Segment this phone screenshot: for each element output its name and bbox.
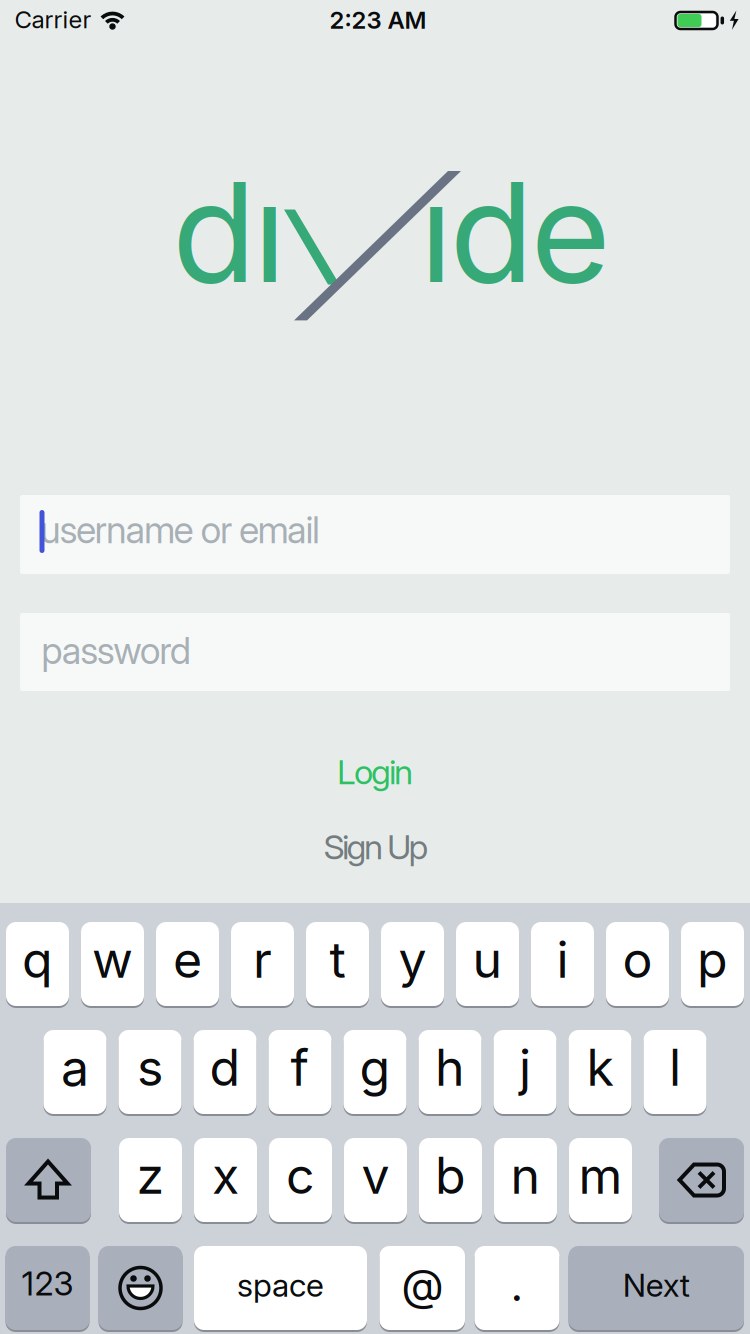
button[interactable]: p (681, 922, 744, 1006)
staticText: username or email (40, 507, 320, 552)
staticText: l (669, 1037, 681, 1098)
button[interactable]: j (493, 1030, 556, 1114)
staticText: z (136, 1145, 164, 1206)
staticText: c (286, 1145, 315, 1206)
staticText: ıde (419, 149, 610, 315)
button[interactable]: c (269, 1138, 332, 1222)
button[interactable]: @ (379, 1246, 465, 1330)
staticText: g (359, 1037, 390, 1098)
button[interactable]: Emoji (98, 1246, 182, 1330)
button[interactable]: t (306, 922, 369, 1006)
button[interactable]: s (118, 1030, 181, 1114)
button[interactable]: g (343, 1030, 406, 1114)
staticText: @ (401, 1258, 443, 1312)
staticText: k (586, 1037, 613, 1098)
button[interactable]: i (531, 922, 594, 1006)
staticText: t (329, 929, 345, 990)
staticText: b (435, 1145, 466, 1206)
button[interactable]: m (569, 1138, 632, 1222)
button[interactable]: x (194, 1138, 257, 1222)
button[interactable]: username or email (20, 495, 730, 574)
staticText: a (61, 1037, 89, 1098)
staticText: s (137, 1037, 163, 1098)
staticText: h (435, 1037, 465, 1098)
button[interactable]: l (643, 1030, 706, 1114)
button[interactable]: u (456, 922, 519, 1006)
staticText: Next (623, 1266, 690, 1304)
button[interactable]: password (20, 613, 730, 691)
button[interactable]: Shift (6, 1138, 91, 1222)
button[interactable]: Login (305, 742, 445, 802)
staticText: i (556, 929, 568, 990)
staticText: Carrier (14, 5, 91, 34)
button[interactable]: r (231, 922, 294, 1006)
staticText: r (253, 929, 272, 990)
staticText: dı (172, 149, 286, 315)
staticText: w (92, 929, 133, 990)
button[interactable]: k (568, 1030, 631, 1114)
button[interactable]: space (194, 1246, 367, 1330)
staticText: space (237, 1266, 324, 1304)
staticText: u (472, 929, 502, 990)
button[interactable]: b (419, 1138, 482, 1222)
button[interactable]: Next (568, 1246, 744, 1330)
button[interactable]: z (119, 1138, 182, 1222)
button[interactable]: d (193, 1030, 256, 1114)
button[interactable]: a (43, 1030, 106, 1114)
staticText: password (41, 628, 191, 673)
staticText: o (622, 929, 652, 990)
button[interactable]: Delete (659, 1138, 744, 1222)
button[interactable]: y (381, 922, 444, 1006)
staticText: d (209, 1037, 240, 1098)
staticText: m (578, 1145, 622, 1206)
staticText: Login (337, 751, 413, 792)
button[interactable]: h (418, 1030, 481, 1114)
staticText: y (398, 929, 426, 990)
button[interactable]: 123 (5, 1246, 89, 1330)
button[interactable]: . (474, 1246, 559, 1330)
staticText: j (519, 1037, 531, 1098)
staticText: n (510, 1145, 540, 1206)
staticText: x (212, 1145, 239, 1206)
button[interactable]: q (6, 922, 69, 1006)
staticText: e (173, 929, 202, 990)
button[interactable]: v (344, 1138, 407, 1222)
button[interactable]: e (156, 922, 219, 1006)
button[interactable]: f (268, 1030, 331, 1114)
button[interactable]: w (81, 922, 144, 1006)
staticText: f (290, 1037, 309, 1098)
button[interactable]: o (606, 922, 669, 1006)
staticText: p (697, 929, 728, 990)
staticText: 123 (21, 1263, 73, 1303)
staticText: v (361, 1145, 389, 1206)
staticText: Sign Up (323, 826, 428, 867)
button[interactable]: n (494, 1138, 557, 1222)
staticText: 2:23 AM (329, 5, 426, 34)
staticText: . (510, 1258, 523, 1312)
button[interactable]: Sign Up (296, 817, 456, 877)
staticText: q (22, 929, 53, 990)
